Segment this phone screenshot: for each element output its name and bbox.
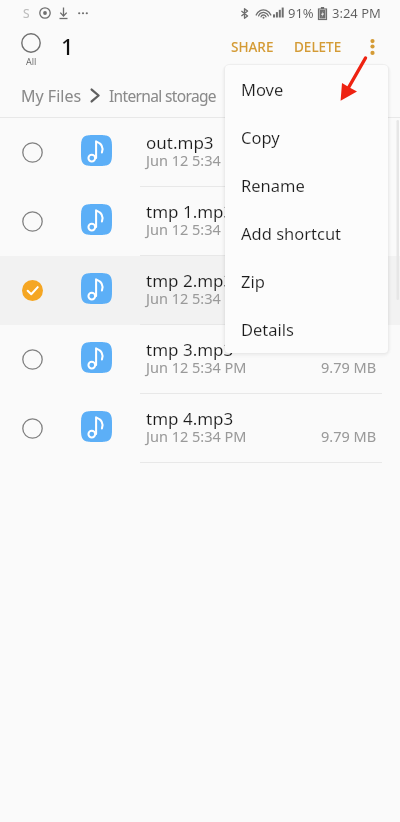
- button[interactable]: tmp 4.mp3: [0, 394, 400, 463]
- staticText: Details: [241, 318, 294, 340]
- staticText: 1: [61, 31, 74, 61]
- button[interactable]: My Files: [21, 85, 82, 107]
- staticText: Move: [241, 78, 284, 100]
- staticText: 9.79 MB: [321, 219, 377, 239]
- staticText: Add shortcut: [241, 222, 342, 244]
- button[interactable]: Move: [225, 65, 388, 113]
- button[interactable]: tmp 3.mp3: [0, 325, 400, 394]
- button[interactable]: More options: [352, 27, 400, 73]
- staticText: 9.79 MB: [321, 426, 377, 446]
- button[interactable]: Rename: [225, 161, 388, 209]
- button[interactable]: All: [0, 26, 62, 74]
- staticText: Rename: [241, 174, 305, 196]
- staticText: DELETE: [294, 38, 342, 56]
- staticText: Jun 12 5:34 PM: [146, 150, 247, 170]
- button[interactable]: DELETE: [284, 28, 352, 66]
- button[interactable]: Add shortcut: [225, 209, 388, 257]
- staticText: tmp 3.mp3: [146, 338, 234, 361]
- staticText: 9.79 MB: [321, 357, 377, 377]
- staticText: SHARE: [231, 38, 274, 56]
- staticText: All: [26, 55, 37, 67]
- button[interactable]: tmp 2.mp3: [0, 256, 400, 325]
- staticText: Jun 12 5:34 PM: [146, 357, 247, 377]
- staticText: S: [23, 5, 30, 21]
- staticText: Jun 12 5:34 PM: [146, 426, 247, 446]
- staticText: tmp 2.mp3: [146, 269, 234, 292]
- staticText: tmp 1.mp3: [146, 200, 234, 223]
- button[interactable]: Internal storage: [109, 85, 216, 106]
- button[interactable]: Zip: [225, 257, 388, 305]
- button[interactable]: SHARE: [221, 28, 284, 66]
- staticText: Copy: [241, 126, 280, 148]
- button[interactable]: Copy: [225, 113, 388, 161]
- staticText: My Files: [21, 85, 82, 107]
- button[interactable]: out.mp3: [0, 118, 400, 187]
- staticText: out.mp3: [146, 131, 214, 154]
- staticText: Jun 12 5:34 PM: [146, 219, 247, 239]
- staticText: Jun 12 5:34 PM: [146, 288, 247, 308]
- staticText: 91%: [288, 4, 314, 22]
- staticText: tmp 4.mp3: [146, 407, 234, 430]
- staticText: Internal storage: [109, 85, 216, 106]
- staticText: 3:24 PM: [332, 4, 381, 22]
- button[interactable]: tmp 1.mp3: [0, 187, 400, 256]
- staticText: Zip: [241, 270, 265, 292]
- button[interactable]: Details: [225, 305, 388, 353]
